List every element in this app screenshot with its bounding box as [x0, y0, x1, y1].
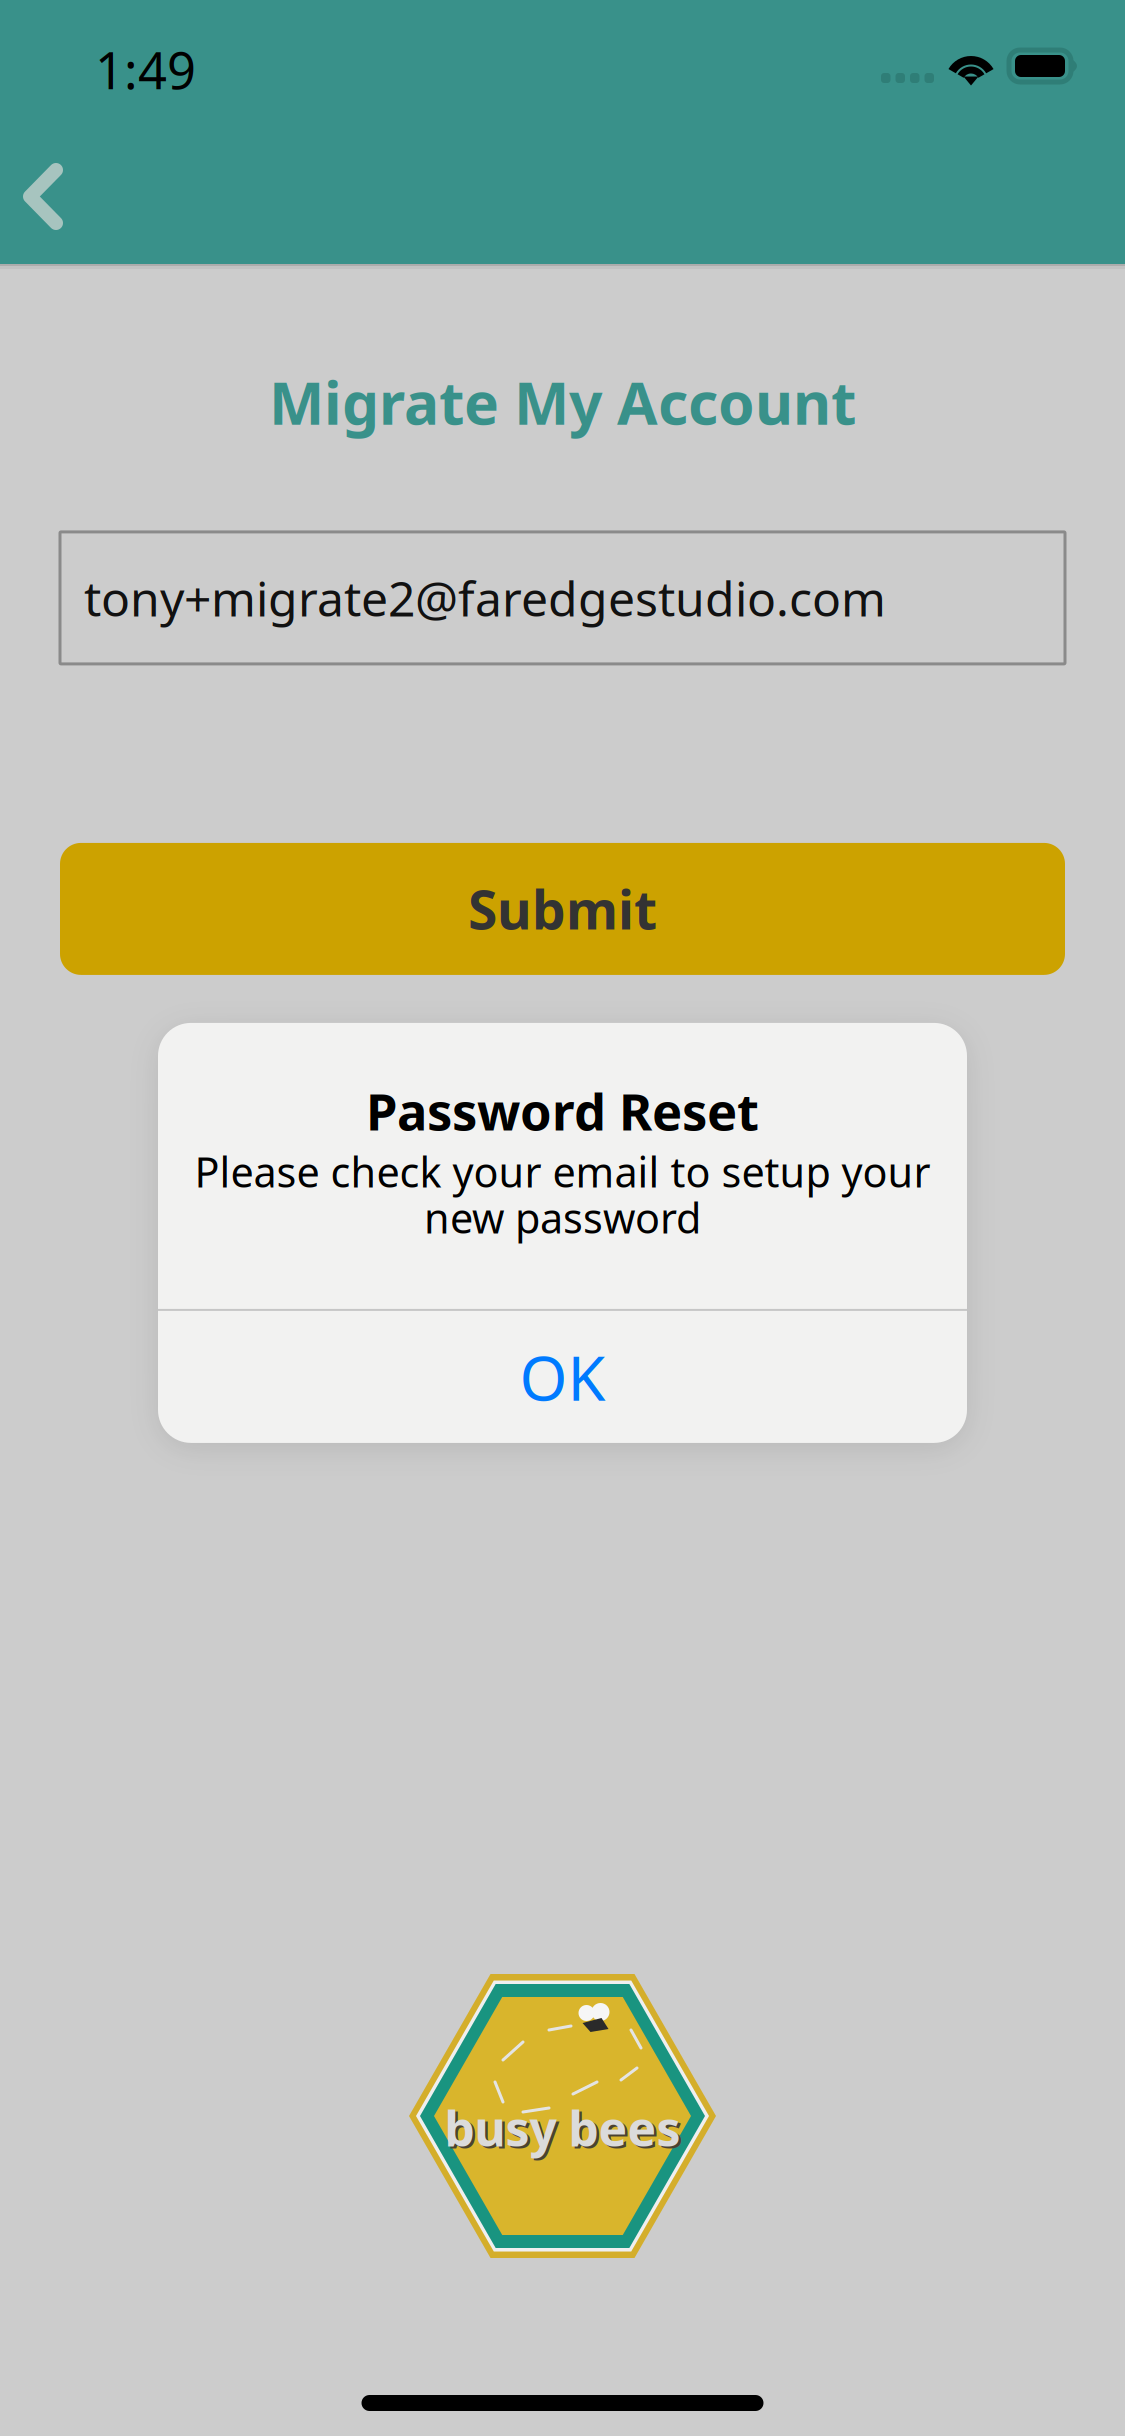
- staticText: Submit: [468, 873, 657, 944]
- staticText: busy bees: [447, 2098, 683, 2162]
- staticText: OK: [519, 1336, 605, 1418]
- staticText: new password: [424, 1190, 701, 1245]
- staticText: Migrate My Account: [269, 363, 856, 441]
- staticText: 1:49: [95, 36, 196, 103]
- button[interactable]: tony+migrate2@faredgestudio.com: [60, 532, 1065, 664]
- button[interactable]: Back: [0, 132, 110, 264]
- staticText: busy bees: [444, 2096, 680, 2160]
- staticText: Password Reset: [366, 1077, 759, 1145]
- button[interactable]: Submit: [60, 843, 1065, 975]
- staticText: tony+migrate2@faredgestudio.com: [84, 566, 886, 630]
- button[interactable]: OK: [158, 1311, 967, 1443]
- staticText: Please check your email to setup your: [194, 1144, 930, 1199]
